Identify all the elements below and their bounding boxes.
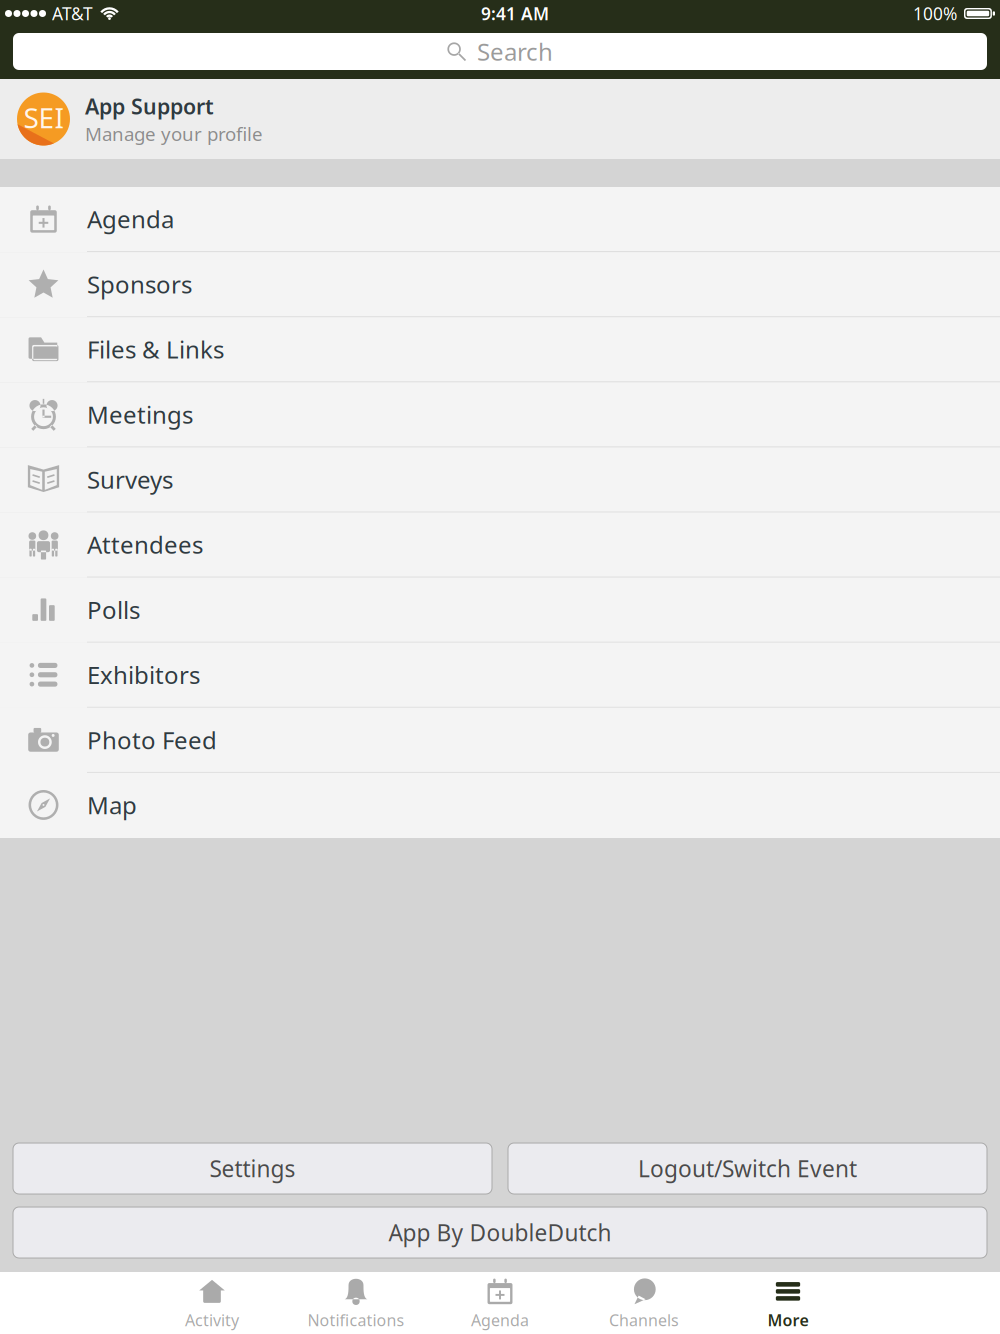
staticText: Map (87, 789, 137, 821)
staticText: Notifications (307, 1309, 404, 1331)
staticText: SEI (23, 99, 63, 136)
button[interactable]: Channels (572, 1272, 716, 1334)
button[interactable]: Agenda (428, 1272, 572, 1334)
button[interactable]: Logout/Switch Event (508, 1143, 987, 1194)
button[interactable]: Notifications (284, 1272, 428, 1334)
button[interactable]: Agenda (0, 187, 1000, 252)
button[interactable]: SEI (0, 79, 1000, 159)
button[interactable]: More (716, 1272, 860, 1334)
button[interactable]: Sponsors (0, 252, 1000, 317)
staticText: Attendees (87, 529, 203, 560)
staticText: Settings (209, 1153, 295, 1183)
button[interactable]: App By DoubleDutch (13, 1207, 987, 1258)
button[interactable]: Attendees (0, 512, 1000, 578)
button[interactable]: Photo Feed (0, 708, 1000, 773)
staticText: Manage your profile (85, 121, 263, 146)
staticText: Sponsors (87, 268, 192, 300)
button[interactable]: Map (0, 773, 1000, 838)
staticText: Surveys (87, 463, 173, 495)
button[interactable]: Exhibitors (0, 643, 1000, 708)
staticText: Meetings (87, 398, 193, 430)
staticText: 100% (913, 2, 957, 25)
button[interactable]: Search (13, 33, 987, 70)
staticText: Polls (87, 594, 140, 626)
staticText: App Support (85, 92, 214, 120)
staticText: Search (477, 36, 553, 67)
button[interactable]: Meetings (0, 382, 1000, 447)
button[interactable]: Activity (140, 1272, 284, 1334)
staticText: Channels (609, 1309, 679, 1331)
staticText: Agenda (471, 1309, 529, 1331)
staticText: More (767, 1309, 808, 1331)
staticText: App By DoubleDutch (388, 1217, 611, 1247)
staticText: 9:41 AM (481, 2, 549, 25)
staticText: Exhibitors (87, 659, 200, 691)
staticText: Logout/Switch Event (638, 1153, 857, 1183)
staticText: Photo Feed (87, 724, 217, 756)
button[interactable]: Surveys (0, 447, 1000, 512)
staticText: AT&T (52, 2, 93, 25)
staticText: Activity (185, 1309, 239, 1331)
staticText: Agenda (87, 203, 174, 235)
button[interactable]: Settings (13, 1143, 492, 1194)
button[interactable]: Polls (0, 578, 1000, 643)
staticText: Files & Links (87, 333, 224, 365)
button[interactable]: Files & Links (0, 317, 1000, 382)
